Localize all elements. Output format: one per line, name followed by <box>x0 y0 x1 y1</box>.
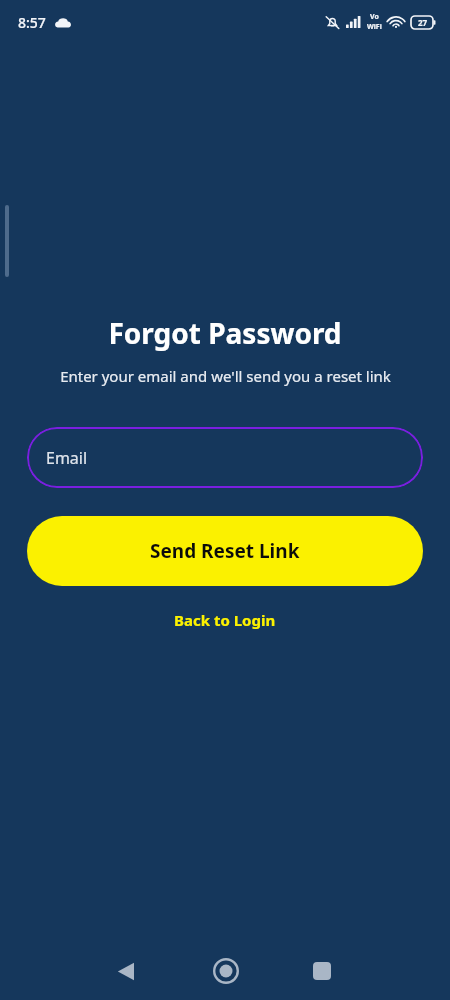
staticText: Enter your email and we'll send you a re… <box>60 366 391 386</box>
staticText: Send Reset Link <box>150 538 300 564</box>
staticText: 8:57 <box>18 13 46 32</box>
staticText: Email <box>46 447 88 469</box>
button[interactable]: Send Reset Link <box>27 516 423 586</box>
button[interactable]: Back to Login <box>160 602 290 638</box>
button[interactable]: Back <box>101 947 149 995</box>
staticText: 27 <box>418 17 428 28</box>
staticText: WiFi <box>367 22 382 32</box>
button[interactable]: Home <box>202 947 250 995</box>
staticText: Back to Login <box>174 610 276 630</box>
staticText: Vo <box>370 12 379 22</box>
button[interactable]: Email <box>27 427 423 488</box>
staticText: Forgot Password <box>108 314 342 352</box>
button[interactable]: Recent apps <box>298 947 346 995</box>
